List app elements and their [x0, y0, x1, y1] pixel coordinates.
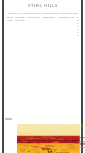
- staticText: ETHEL HILLS: [28, 3, 58, 9]
- button[interactable]: BIOGRAPHY: [41, 16, 57, 19]
- staticText: TEACHING ART: [58, 16, 75, 19]
- staticText: STATEMENT: [27, 16, 40, 19]
- button[interactable]: CONTACT: [76, 16, 80, 37]
- staticText: PICTURE: [15, 16, 25, 19]
- staticText: ABSTRACT LANDSCAPES IN WATERCOLOR AND CO…: [7, 11, 78, 14]
- button[interactable]: Abstract landscape painting: [17, 124, 80, 153]
- staticText: BIOGRAPHY: [42, 16, 56, 19]
- button[interactable]: TEACHING ART: [57, 16, 76, 19]
- staticText: HOME: [6, 16, 13, 19]
- staticText: CONTACT: [77, 16, 79, 37]
- button[interactable]: ETHEL HILLS: [0, 3, 85, 9]
- button[interactable]: HOME: [5, 16, 14, 22]
- button[interactable]: PICTURE: [14, 16, 26, 22]
- button[interactable]: STATEMENT: [26, 16, 41, 19]
- staticText: GALLERY: [15, 19, 25, 22]
- staticText: PAGE: [7, 19, 13, 22]
